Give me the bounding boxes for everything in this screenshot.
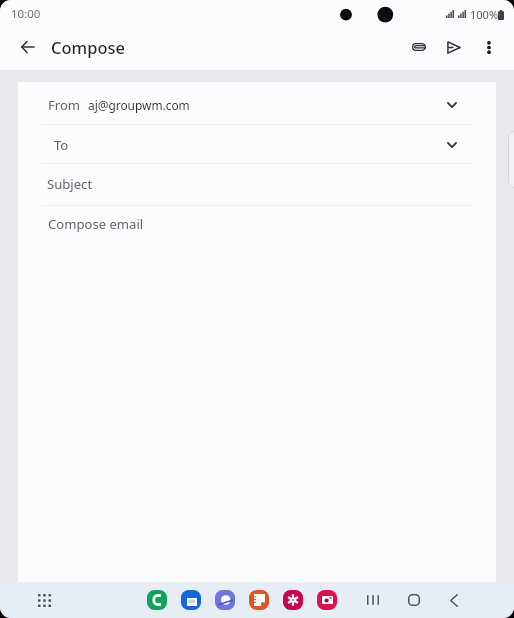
staticText: 100% — [470, 7, 499, 22]
staticText: Subject — [47, 175, 93, 193]
staticText: From — [48, 96, 81, 114]
button[interactable]: Subject — [18, 164, 496, 205]
button[interactable]: Send — [438, 31, 470, 63]
button[interactable]: Recent apps — [359, 586, 387, 614]
staticText: 10:00 — [11, 6, 41, 22]
button[interactable]: Galaxy Store — [283, 590, 303, 610]
button[interactable]: Edge panel — [508, 131, 514, 188]
staticText: Compose — [51, 36, 125, 58]
button[interactable]: Back — [12, 32, 42, 62]
button[interactable]: Compose email — [18, 206, 496, 582]
button[interactable]: Expand — [438, 131, 466, 159]
button[interactable]: Back — [440, 586, 468, 614]
button[interactable]: Notes — [249, 590, 269, 610]
button[interactable]: Attach file — [403, 31, 435, 63]
button[interactable]: From — [18, 82, 496, 124]
button[interactable]: Expand — [438, 91, 466, 119]
staticText: aj@groupwm.com — [88, 97, 190, 113]
button[interactable]: Home — [400, 586, 428, 614]
button[interactable]: Internet — [215, 590, 235, 610]
staticText: Compose email — [48, 215, 144, 233]
button[interactable]: More options — [473, 31, 505, 63]
button[interactable]: To — [18, 125, 496, 163]
button[interactable]: Camera — [317, 590, 337, 610]
staticText: To — [54, 136, 69, 154]
button[interactable]: Messages — [181, 590, 201, 610]
button[interactable]: Apps — [32, 588, 56, 612]
button[interactable]: Phone — [147, 590, 167, 610]
